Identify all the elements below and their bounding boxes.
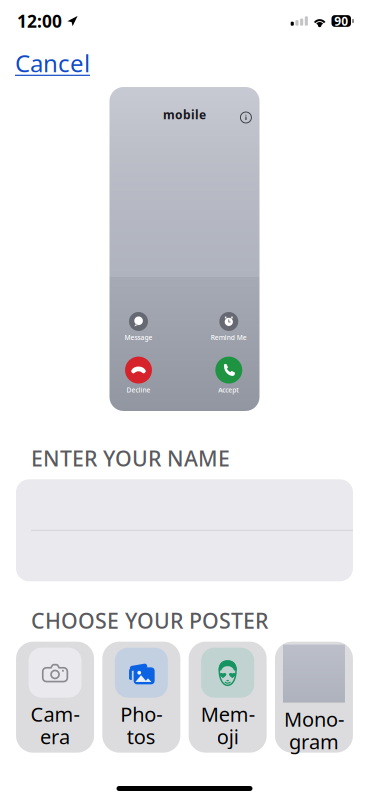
staticText: ENTER YOUR NAME — [31, 444, 230, 472]
button[interactable]: Remind Me — [201, 312, 257, 342]
button[interactable]: Mem- — [189, 642, 267, 753]
staticText: oji — [217, 723, 239, 750]
staticText: gram — [289, 728, 339, 755]
staticText: Remind Me — [211, 333, 247, 342]
staticText: Mono- — [284, 706, 344, 732]
button[interactable]: Cam- — [16, 642, 94, 753]
staticText: 12:00 — [17, 9, 62, 32]
button[interactable]: Pho- — [102, 642, 180, 753]
staticText: 90 — [334, 13, 348, 29]
staticText: Cam- — [31, 701, 80, 727]
button[interactable]: Mono- — [275, 642, 353, 753]
button[interactable]: Cancel — [15, 47, 90, 79]
staticText: Decline — [126, 386, 150, 394]
staticText: Cancel — [15, 47, 90, 79]
staticText: Message — [124, 333, 152, 342]
staticText: tos — [127, 723, 156, 750]
staticText: mobile — [163, 106, 206, 122]
button[interactable]: Accept — [201, 357, 257, 394]
staticText: era — [40, 723, 70, 750]
button[interactable]: Decline — [110, 357, 166, 394]
button[interactable]: Message — [110, 312, 166, 342]
staticText: Pho- — [120, 701, 162, 727]
staticText: Accept — [218, 386, 239, 394]
staticText: CHOOSE YOUR POSTER — [31, 606, 268, 635]
staticText: Mem- — [201, 701, 255, 727]
